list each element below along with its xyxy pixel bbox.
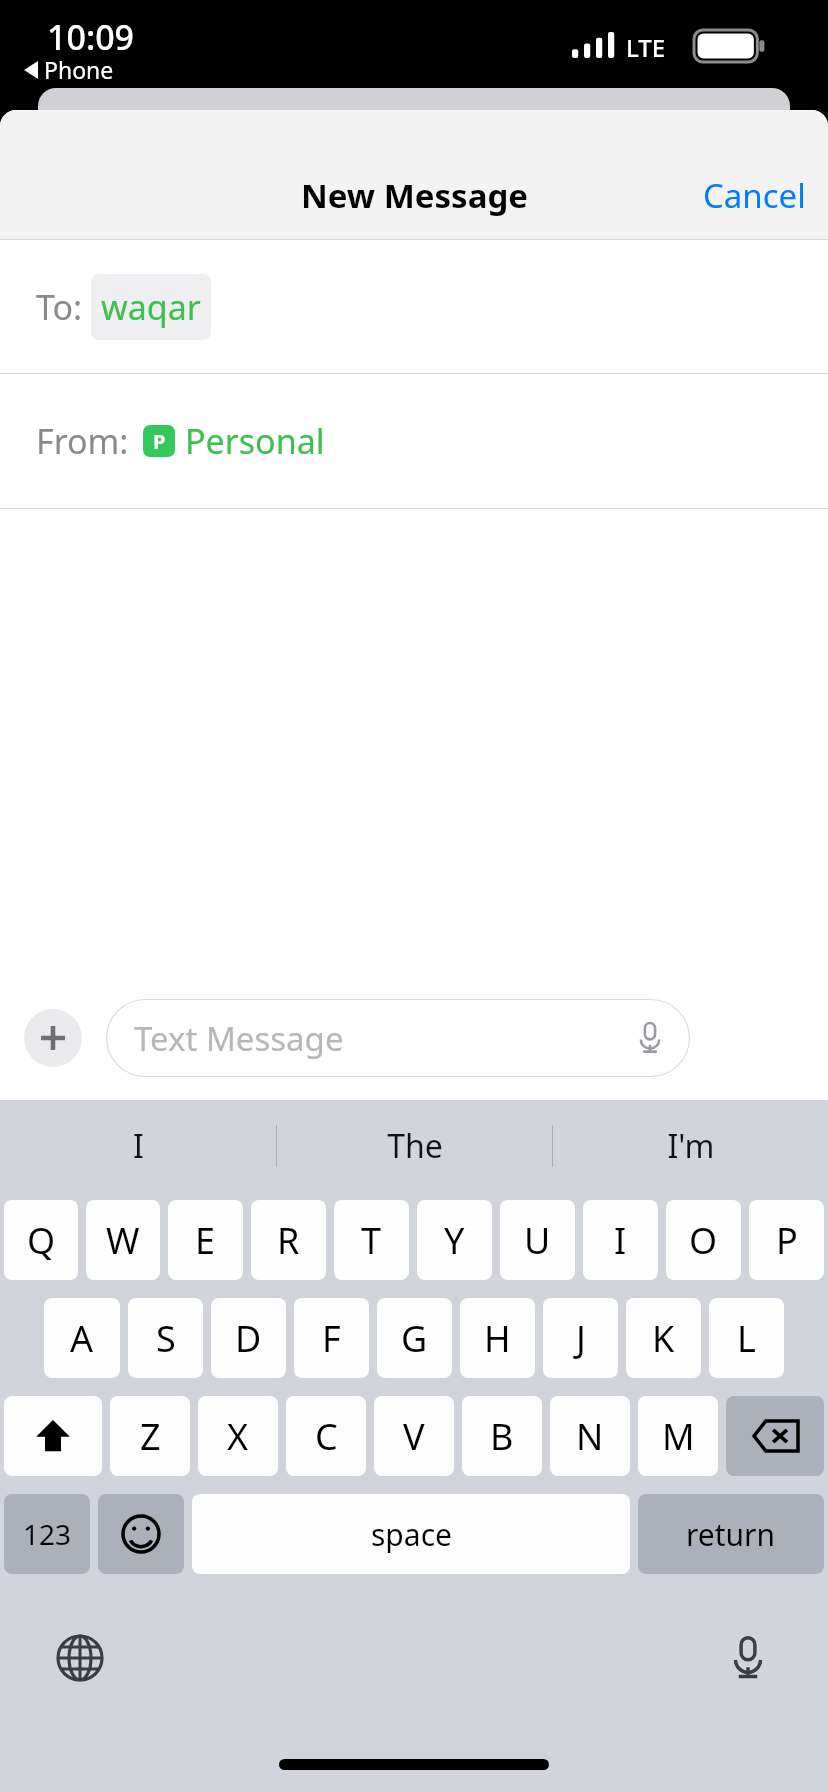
staticText: X (227, 1412, 249, 1461)
button[interactable]: Backspace (726, 1396, 824, 1476)
button[interactable]: U (500, 1200, 575, 1280)
button[interactable]: O (666, 1200, 741, 1280)
staticText: space (371, 1514, 452, 1555)
button[interactable]: Change keyboard (44, 1622, 116, 1694)
staticText: P (153, 428, 166, 455)
staticText: Cancel (703, 173, 806, 218)
button[interactable]: Y (417, 1200, 492, 1280)
button[interactable]: R (251, 1200, 326, 1280)
button[interactable]: I'm (553, 1100, 828, 1192)
button[interactable]: S (128, 1298, 203, 1378)
staticText: A (70, 1314, 94, 1363)
button[interactable]: Q (4, 1200, 78, 1280)
button[interactable]: C (286, 1396, 366, 1476)
staticText: O (689, 1216, 718, 1265)
staticText: S (156, 1314, 176, 1363)
staticText: LTE (626, 31, 666, 64)
button[interactable]: H (460, 1298, 535, 1378)
button[interactable]: X (198, 1396, 278, 1476)
staticText: waqar (101, 284, 201, 330)
staticText: G (401, 1314, 428, 1363)
button[interactable]: B (462, 1396, 542, 1476)
button[interactable]: G (377, 1298, 452, 1378)
staticText: K (652, 1314, 675, 1363)
staticText: I (133, 1124, 144, 1168)
button[interactable]: A (44, 1298, 120, 1378)
button[interactable]: N (550, 1396, 630, 1476)
button[interactable]: D (211, 1298, 286, 1378)
button[interactable]: Shift (4, 1396, 102, 1476)
button[interactable]: F (294, 1298, 369, 1378)
staticText: U (524, 1216, 551, 1265)
staticText: B (490, 1412, 514, 1461)
button[interactable]: The (277, 1100, 552, 1192)
staticText: The (387, 1124, 443, 1168)
staticText: From: (36, 418, 129, 464)
button[interactable]: Z (110, 1396, 190, 1476)
staticText: R (277, 1216, 300, 1265)
staticText: F (322, 1314, 341, 1363)
staticText: H (484, 1314, 511, 1363)
button[interactable]: Cancel (681, 165, 828, 226)
button[interactable]: W (86, 1200, 160, 1280)
button[interactable]: Phone (24, 54, 114, 85)
button[interactable]: I (0, 1100, 276, 1192)
staticText: L (737, 1314, 756, 1363)
staticText: 10:09 (47, 14, 135, 60)
staticText: Q (27, 1216, 56, 1265)
staticText: Text Message (134, 1016, 344, 1061)
button[interactable]: Add attachment (24, 1009, 82, 1067)
staticText: V (403, 1412, 425, 1461)
button[interactable]: Dictation (712, 1622, 784, 1694)
button[interactable]: L (709, 1298, 784, 1378)
button[interactable]: M (638, 1396, 718, 1476)
staticText: W (106, 1216, 140, 1265)
staticText: J (576, 1314, 586, 1363)
button[interactable]: return (638, 1494, 824, 1574)
button[interactable]: V (374, 1396, 454, 1476)
button[interactable]: J (543, 1298, 618, 1378)
button[interactable]: Text Message (106, 999, 690, 1077)
button[interactable]: space (192, 1494, 630, 1574)
staticText: Phone (44, 54, 114, 85)
button[interactable]: I (583, 1200, 658, 1280)
button[interactable]: K (626, 1298, 701, 1378)
staticText: 123 (23, 1515, 72, 1553)
staticText: I (614, 1216, 627, 1265)
button[interactable]: E (168, 1200, 243, 1280)
staticText: Y (444, 1216, 465, 1265)
staticText: I'm (667, 1124, 715, 1168)
button[interactable]: To: (0, 240, 828, 373)
button[interactable]: 123 (4, 1494, 90, 1574)
button[interactable]: T (334, 1200, 409, 1280)
staticText: Z (140, 1412, 161, 1461)
staticText: M (662, 1412, 695, 1461)
staticText: P (776, 1216, 798, 1265)
button[interactable]: P (749, 1200, 824, 1280)
staticText: C (315, 1412, 338, 1461)
staticText: Personal (185, 418, 325, 464)
button[interactable]: Emoji (98, 1494, 184, 1574)
button[interactable]: Dictate (630, 1018, 670, 1058)
staticText: E (195, 1216, 216, 1265)
staticText: return (686, 1514, 776, 1555)
button[interactable]: From: (0, 374, 828, 508)
staticText: T (361, 1216, 382, 1265)
staticText: To: (36, 284, 83, 330)
staticText: N (576, 1412, 604, 1461)
staticText: New Message (301, 173, 528, 218)
staticText: D (235, 1314, 262, 1363)
